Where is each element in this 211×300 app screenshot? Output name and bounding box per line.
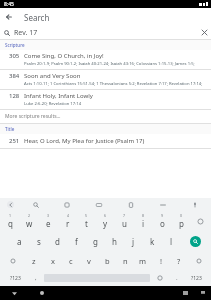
button[interactable]: ?123 [2,270,28,286]
button[interactable]: Back [0,286,28,300]
button[interactable]: v [80,251,98,270]
button[interactable]: Recents [175,286,195,300]
button[interactable]: 9 [153,211,172,231]
staticText: d [55,236,60,247]
staticText: m [139,256,147,266]
button[interactable]: Shift right [188,251,210,270]
button[interactable]: d [48,231,67,251]
staticText: ?123 [191,275,202,282]
button[interactable]: Voice input [179,198,211,211]
staticText: 251 [9,137,20,145]
button[interactable]: 7 [115,211,134,231]
button[interactable]: Clear [198,26,211,39]
staticText: ! [160,256,163,266]
button[interactable]: ! [152,251,170,270]
button[interactable]: Emoji [150,270,169,286]
button[interactable]: a [10,231,29,251]
staticText: t [85,218,88,229]
staticText: 9 [161,213,164,218]
button[interactable]: j [124,231,143,251]
staticText: g [93,236,98,247]
staticText: a [17,236,22,247]
staticText: x [51,256,55,266]
staticText: 384 [9,72,20,80]
button[interactable]: 1 [1,211,20,231]
staticText: . [176,274,178,282]
button[interactable]: s [29,231,48,251]
button[interactable]: Search [181,231,210,251]
staticText: Soon and Very Soon [24,72,81,80]
staticText: k [150,236,155,247]
button[interactable]: k [143,231,162,251]
staticText: Rev. 17 [14,28,38,38]
staticText: 3 [47,213,50,218]
button[interactable]: Rev. 17 [0,26,211,39]
staticText: e [46,218,51,229]
button[interactable]: Expand toolbar [0,198,20,211]
button[interactable]: g [86,231,105,251]
staticText: w [26,218,33,229]
button[interactable]: 3 [39,211,58,231]
button[interactable]: 305 [0,50,211,70]
button[interactable]: Period [169,270,184,286]
staticText: l [170,236,173,247]
button[interactable]: Search [20,198,51,211]
button[interactable]: GIF [83,198,115,211]
button[interactable]: Settings [147,198,179,211]
staticText: Luke 2:6-20; Revelation 17:14 [24,101,82,107]
button[interactable]: Backspace [191,211,210,231]
button[interactable]: 8 [134,211,153,231]
button[interactable]: 0 [172,211,191,231]
staticText: 7 [123,213,126,218]
button[interactable]: 128 [0,90,211,110]
button[interactable]: z [24,251,43,270]
staticText: s [37,236,41,247]
staticText: 8:45 [4,1,14,8]
button[interactable]: 384 [0,70,211,90]
staticText: q [8,218,13,229]
button[interactable]: l [162,231,181,251]
staticText: Come Sing, O Church, in Joy! [24,52,104,60]
button[interactable]: More scripture results… [0,110,211,124]
staticText: ?123 [10,275,21,282]
staticText: 6 [104,213,107,218]
button[interactable]: Home [28,286,56,300]
button[interactable]: Comma [28,270,44,286]
staticText: Infant Holy, Infant Lowly [24,92,93,100]
button[interactable]: n [116,251,134,270]
staticText: Search [24,12,50,23]
button[interactable]: f [67,231,86,251]
staticText: z [32,256,36,266]
button[interactable]: ? [170,251,188,270]
button[interactable]: Keyboard indicator [195,286,211,300]
staticText: v [87,256,91,266]
staticText: 0 [180,213,183,218]
staticText: 2 [28,213,31,218]
staticText: j [132,236,135,247]
staticText: 1 [9,213,12,218]
staticText: f [75,236,78,247]
button[interactable]: x [43,251,62,270]
button[interactable]: 251 [0,134,211,149]
button[interactable]: Shift [1,251,24,270]
staticText: ? [177,256,181,266]
button[interactable]: Stickers [51,198,83,211]
staticText: r [66,218,70,229]
button[interactable]: m [134,251,152,270]
button[interactable]: ?123 [184,270,209,286]
button[interactable]: c [62,251,80,270]
button[interactable]: 4 [58,211,77,231]
button[interactable]: Clipboard [115,198,147,211]
button[interactable]: Back [0,8,18,26]
button[interactable]: 6 [96,211,115,231]
button[interactable]: 2 [20,211,39,231]
staticText: p [179,218,184,229]
staticText: 128 [9,92,20,100]
staticText: More scripture results… [5,113,61,120]
button[interactable]: 5 [77,211,96,231]
button[interactable]: b [98,251,116,270]
button[interactable]: h [105,231,124,251]
staticText: o [160,218,165,229]
staticText: i [142,218,145,229]
